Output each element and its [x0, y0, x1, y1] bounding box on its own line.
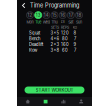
staticText: Wed	[43, 20, 50, 24]
staticText: 13	[36, 13, 41, 18]
staticText: 12	[27, 13, 32, 18]
button[interactable]: 13	[35, 12, 42, 24]
staticText: Time Programming	[30, 2, 79, 9]
staticText: 16	[60, 13, 65, 18]
button[interactable]: 12	[26, 12, 33, 24]
staticText: 120	[61, 30, 69, 35]
staticText: 80	[62, 36, 68, 41]
button[interactable]: Schedule	[39, 97, 53, 106]
button[interactable]: 17	[67, 12, 74, 24]
staticText: 4x6	[50, 36, 59, 41]
staticText: KG	[72, 25, 77, 30]
staticText: Fri	[61, 20, 65, 24]
staticText: 160	[61, 42, 69, 47]
button[interactable]: START WORKOUT	[24, 86, 84, 93]
staticText: Squat	[29, 30, 40, 35]
staticText: 8	[73, 30, 76, 35]
staticText: 9	[73, 42, 76, 47]
staticText: Deadlift	[29, 42, 43, 47]
button[interactable]: 18	[75, 12, 82, 24]
button[interactable]: Home	[21, 97, 35, 106]
button[interactable]: Profile	[74, 97, 88, 106]
staticText: Sun	[76, 20, 82, 24]
staticText: 3x8	[50, 48, 59, 53]
staticText: 7	[74, 48, 76, 53]
staticText: 15	[52, 13, 57, 18]
staticText: 14	[44, 13, 49, 18]
staticText: Sat	[68, 20, 73, 24]
staticText: START WORKOUT	[35, 87, 73, 93]
button[interactable]: 15	[51, 12, 58, 24]
staticText: SETS	[51, 25, 59, 30]
staticText: Thu	[51, 20, 57, 24]
button[interactable]: Back	[19, 1, 28, 10]
staticText: REPS	[61, 25, 69, 30]
staticText: 18	[76, 13, 81, 18]
button[interactable]: Progress	[56, 97, 70, 106]
staticText: Bench	[29, 36, 40, 41]
button[interactable]: 16	[59, 12, 66, 24]
staticText: 2x3	[50, 42, 59, 47]
staticText: Tue	[35, 20, 41, 24]
staticText: 60	[62, 48, 68, 53]
staticText: Row	[29, 48, 37, 53]
staticText: Mon	[26, 20, 33, 24]
staticText: 3x5	[50, 30, 59, 35]
button[interactable]: 14	[43, 12, 50, 24]
staticText: 17	[69, 13, 73, 18]
staticText: 7	[74, 36, 76, 41]
